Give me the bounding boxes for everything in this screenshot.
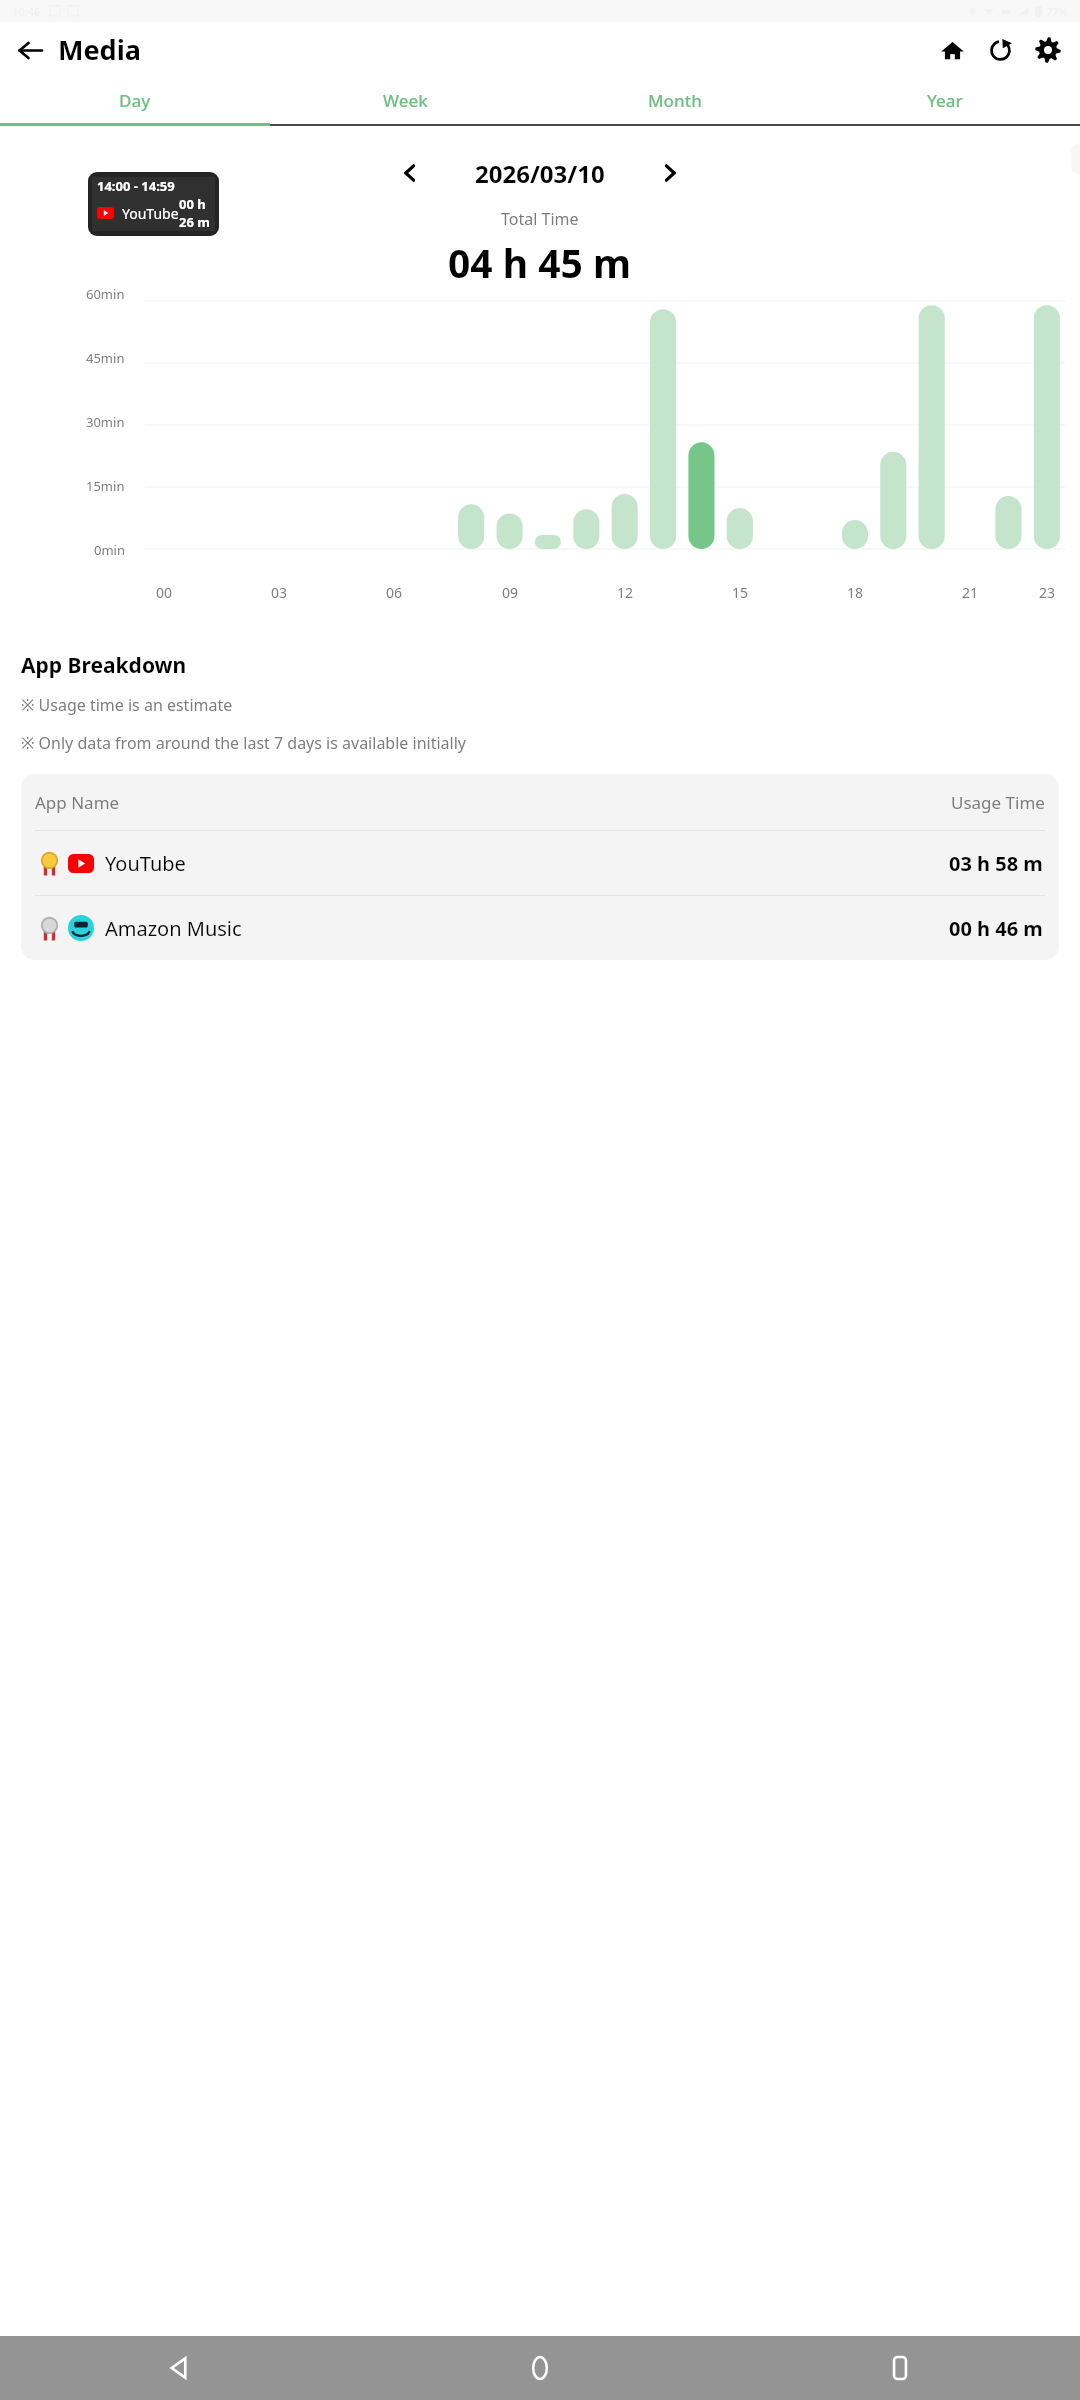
- button[interactable]: Year: [810, 77, 1080, 123]
- button[interactable]: Next day: [647, 150, 693, 196]
- staticText: 03: [271, 583, 288, 602]
- staticText: 06: [386, 583, 403, 602]
- button[interactable]: Previous day: [387, 150, 433, 196]
- staticText: 21: [962, 583, 979, 602]
- staticText: Year: [927, 89, 963, 112]
- staticText: Media: [58, 31, 141, 68]
- staticText: 0min: [94, 541, 125, 559]
- staticText: 04 h 45 m: [448, 236, 632, 289]
- button[interactable]: Back: [0, 2336, 360, 2400]
- staticText: YouTube: [122, 204, 179, 223]
- staticText: 60min: [86, 285, 125, 303]
- staticText: App Name: [35, 791, 120, 814]
- staticText: 09: [502, 583, 519, 602]
- staticText: 45min: [86, 349, 125, 367]
- staticText: 15: [732, 583, 749, 602]
- staticText: 18: [847, 583, 864, 602]
- button[interactable]: Amazon Music: [35, 896, 1045, 960]
- staticText: 15min: [86, 477, 125, 495]
- staticText: YouTube: [105, 850, 186, 877]
- staticText: 2026/03/10: [475, 157, 605, 190]
- staticText: 00 h 46 m: [949, 915, 1043, 942]
- staticText: Usage Time: [951, 791, 1045, 814]
- staticText: ※ Only data from around the last 7 days …: [21, 732, 466, 754]
- staticText: Amazon Music: [105, 915, 242, 942]
- staticText: Month: [648, 89, 702, 112]
- staticText: 23: [1039, 583, 1056, 602]
- staticText: 00: [156, 583, 173, 602]
- staticText: Total Time: [501, 208, 579, 230]
- button[interactable]: Refresh: [976, 26, 1024, 74]
- staticText: ※ Usage time is an estimate: [21, 694, 233, 716]
- staticText: 12: [617, 583, 634, 602]
- button[interactable]: Day: [0, 77, 270, 123]
- button[interactable]: Home: [928, 26, 976, 74]
- staticText: Day: [119, 89, 151, 112]
- button[interactable]: Month: [540, 77, 810, 123]
- button[interactable]: Back: [6, 26, 54, 74]
- staticText: 30min: [86, 413, 125, 431]
- button[interactable]: Home: [360, 2336, 720, 2400]
- staticText: 14:00 - 14:59: [97, 177, 175, 195]
- staticText: 00 h 26 m: [179, 195, 210, 231]
- staticText: App Breakdown: [21, 651, 187, 680]
- button[interactable]: Week: [270, 77, 540, 123]
- button[interactable]: Settings: [1024, 26, 1072, 74]
- staticText: 03 h 58 m: [949, 850, 1043, 877]
- staticText: Week: [383, 89, 428, 112]
- button[interactable]: Recent apps: [720, 2336, 1080, 2400]
- button[interactable]: YouTube: [35, 831, 1045, 895]
